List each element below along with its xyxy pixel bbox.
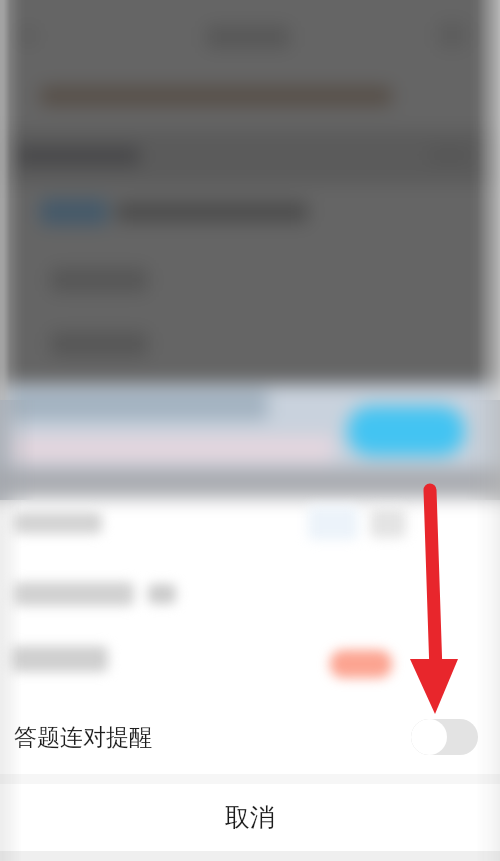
- staticText: 取消: [225, 802, 275, 833]
- button[interactable]: 答题连对提醒: [0, 700, 500, 774]
- button[interactable]: 答题连对提醒 toggle: [411, 719, 478, 755]
- staticText: 答题连对提醒: [14, 723, 152, 752]
- button[interactable]: 取消: [0, 784, 500, 851]
